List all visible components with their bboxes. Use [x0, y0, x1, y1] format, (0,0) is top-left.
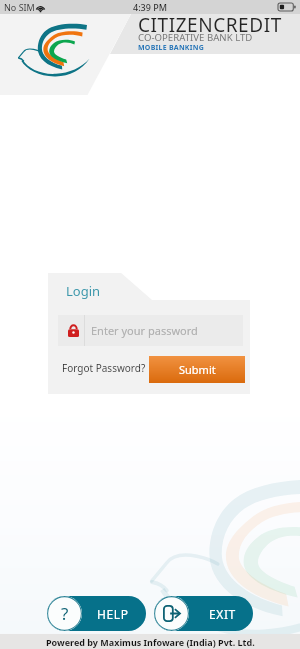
staticText: Enter your password [91, 323, 198, 338]
staticText: No SIM [4, 1, 35, 13]
staticText: Powered by Maximus Infoware (India) Pvt.… [46, 636, 255, 648]
staticText: Submit [179, 362, 216, 377]
staticText: ? [61, 602, 69, 625]
staticText: HELP [97, 606, 129, 622]
staticText: Login [66, 282, 101, 300]
staticText: CO-OPERATIVE BANK LTD [138, 31, 253, 44]
button[interactable]: Submit [149, 356, 245, 383]
button[interactable]: HELP [47, 596, 146, 631]
staticText: CITIZENCREDIT [138, 12, 282, 38]
button[interactable]: Forgot Password? [62, 361, 146, 375]
staticText: EXIT [209, 606, 236, 622]
staticText: MOBILE BANKING [138, 43, 204, 53]
button[interactable]: EXIT [154, 596, 253, 631]
staticText: 4:39 PM [133, 1, 167, 13]
other: Exit [163, 605, 180, 622]
